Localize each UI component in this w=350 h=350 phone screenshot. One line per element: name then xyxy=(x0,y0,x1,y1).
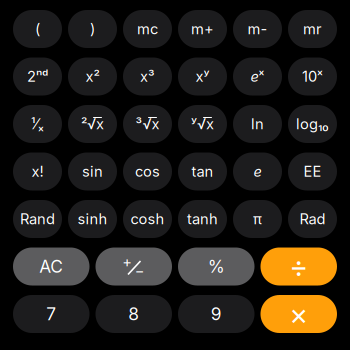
staticText: − xyxy=(135,262,145,280)
staticText: sin xyxy=(82,163,103,180)
button[interactable]: ¹⁄ₓ xyxy=(13,105,62,143)
button[interactable]: tan xyxy=(178,152,227,190)
staticText: ) xyxy=(90,20,95,38)
staticText: π xyxy=(253,210,262,228)
staticText: mc xyxy=(137,20,158,38)
button[interactable]: AC xyxy=(13,247,89,285)
staticText: x³ xyxy=(140,68,155,85)
button[interactable]: + xyxy=(95,247,172,285)
staticText: x! xyxy=(31,163,43,180)
button[interactable]: ʸ√x xyxy=(178,105,227,143)
staticText: m- xyxy=(247,20,267,38)
staticText: mr xyxy=(303,20,322,38)
staticText: cos xyxy=(135,163,160,180)
button[interactable]: xʸ xyxy=(178,57,227,95)
button[interactable]: sinh xyxy=(68,200,117,238)
button[interactable]: 8 xyxy=(95,295,172,333)
button[interactable]: mc xyxy=(123,10,172,48)
button[interactable]: e xyxy=(233,57,282,95)
button[interactable]: x³ xyxy=(123,57,172,95)
staticText: m+ xyxy=(191,20,214,38)
staticText: AC xyxy=(39,256,63,277)
button[interactable]: sin xyxy=(68,152,117,190)
staticText: 2ⁿᵈ xyxy=(27,68,48,85)
button[interactable]: ³√x xyxy=(123,105,172,143)
staticText: ¹⁄ₓ xyxy=(31,115,44,133)
button[interactable]: ÷ xyxy=(260,247,337,285)
button[interactable]: 7 xyxy=(13,295,89,333)
button[interactable]: m+ xyxy=(178,10,227,48)
button[interactable]: 10ˣ xyxy=(288,57,337,95)
button[interactable]: Rad xyxy=(288,200,337,238)
staticText: ln xyxy=(251,115,264,133)
button[interactable]: cos xyxy=(123,152,172,190)
button[interactable]: m- xyxy=(233,10,282,48)
staticText: sinh xyxy=(77,210,107,228)
staticText: tan xyxy=(191,163,213,180)
staticText: ÷ xyxy=(289,249,308,284)
staticText: 10ˣ xyxy=(302,68,323,85)
staticText: cosh xyxy=(130,210,164,228)
staticText: Rad xyxy=(299,210,325,228)
staticText: log₁₀ xyxy=(296,115,329,133)
button[interactable]: x! xyxy=(13,152,62,190)
button[interactable]: cosh xyxy=(123,200,172,238)
button[interactable]: ²√x xyxy=(68,105,117,143)
button[interactable]: Rand xyxy=(13,200,62,238)
button[interactable]: × xyxy=(260,295,337,333)
staticText: + xyxy=(122,253,132,271)
staticText: e xyxy=(253,163,261,180)
button[interactable]: ln xyxy=(233,105,282,143)
button[interactable]: mr xyxy=(288,10,337,48)
staticText: x² xyxy=(85,68,99,85)
staticText: tanh xyxy=(187,210,218,228)
staticText: × xyxy=(289,296,308,332)
button[interactable]: x² xyxy=(68,57,117,95)
button[interactable]: 9 xyxy=(178,295,254,333)
button[interactable]: % xyxy=(178,247,254,285)
staticText: Rand xyxy=(20,210,55,228)
staticText: ʸ√x xyxy=(191,115,214,133)
staticText: EE xyxy=(303,163,321,180)
staticText: ³√x xyxy=(135,115,159,133)
button[interactable]: log₁₀ xyxy=(288,105,337,143)
staticText: ( xyxy=(35,20,40,38)
staticText: ˣ xyxy=(258,68,264,85)
button[interactable]: π xyxy=(233,200,282,238)
staticText: xʸ xyxy=(195,68,209,85)
button[interactable]: EE xyxy=(288,152,337,190)
staticText: 8 xyxy=(128,303,139,324)
staticText: e xyxy=(250,68,258,85)
staticText: 9 xyxy=(211,303,222,324)
button[interactable]: 2ⁿᵈ xyxy=(13,57,62,95)
staticText: ²√x xyxy=(81,115,104,133)
button[interactable]: ( xyxy=(13,10,62,48)
staticText: % xyxy=(208,256,225,277)
button[interactable]: e xyxy=(233,152,282,190)
button[interactable]: ) xyxy=(68,10,117,48)
staticText: 7 xyxy=(46,303,56,324)
button[interactable]: tanh xyxy=(178,200,227,238)
